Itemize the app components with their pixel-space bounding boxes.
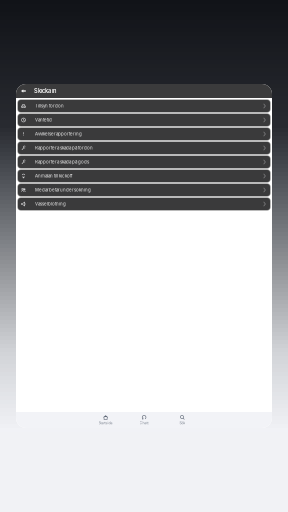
staticText: Tillsyn fordon [35,103,64,109]
button[interactable]: Chatt [125,413,163,427]
staticText: Rapportera skada på gods [35,159,89,165]
staticText: Chatt [139,421,148,425]
button[interactable]: Medarbetarundersökning [17,184,271,196]
button[interactable]: Rapportera skada på gods [17,156,271,168]
staticText: Väntetid [35,117,52,123]
button[interactable]: Startsida [86,413,125,427]
button[interactable]: Sök [163,413,202,427]
staticText: Vasselblötning [35,201,66,207]
button[interactable]: Anmälan till kickoff [17,170,271,182]
button[interactable]: Avvikelserapportering [17,128,271,140]
staticText: Skicka in [34,88,56,94]
button[interactable]: Vasselblötning [17,198,271,210]
staticText: Sök [179,421,185,425]
staticText: Rapportera skada på fordon [35,145,93,151]
button[interactable]: Back [16,84,31,98]
button[interactable]: Rapportera skada på fordon [17,142,271,154]
button[interactable]: Tillsyn fordon [17,100,271,112]
staticText: Anmälan till kickoff [35,173,73,179]
button[interactable]: Väntetid [17,114,271,126]
staticText: Startsida [99,421,113,425]
staticText: Avvikelserapportering [35,131,82,137]
staticText: Medarbetarundersökning [35,187,91,193]
